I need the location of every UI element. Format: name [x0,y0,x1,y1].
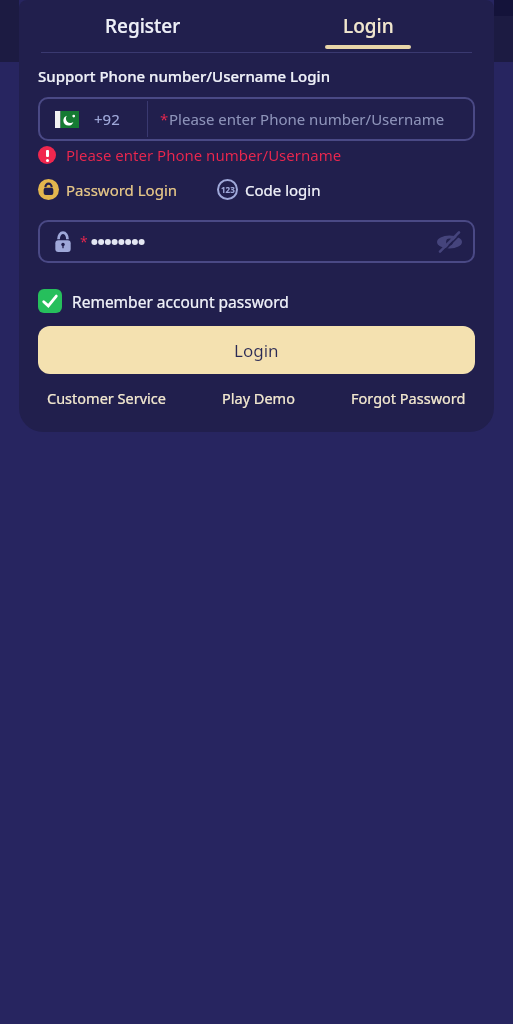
staticText: Login [343,13,394,39]
staticText: Remember account password [72,291,289,312]
staticText: * [160,109,169,129]
button[interactable]: Remember account password [38,289,289,313]
button[interactable]: Password Login [38,179,178,200]
staticText: Register [105,13,181,39]
staticText: Support Phone number/Username Login [38,66,331,86]
button[interactable]: Register [19,0,256,52]
staticText: * [80,232,88,251]
button[interactable]: Forgot Password [351,388,466,408]
staticText: Please enter Phone number/Username [169,109,445,129]
staticText: 123 [221,184,235,195]
staticText: +92 [94,109,120,129]
button[interactable]: Login [256,0,494,52]
button[interactable]: * [38,220,475,263]
button[interactable]: Play Demo [222,388,295,408]
staticText: Password Login [66,180,178,200]
button[interactable]: +92 [38,97,475,141]
staticText: Code login [245,180,321,200]
button[interactable]: Customer Service [47,388,166,408]
staticText: Please enter Phone number/Username [66,145,342,165]
button[interactable]: Login [38,326,475,374]
staticText: Login [234,339,279,362]
button[interactable]: 123 [217,179,321,200]
